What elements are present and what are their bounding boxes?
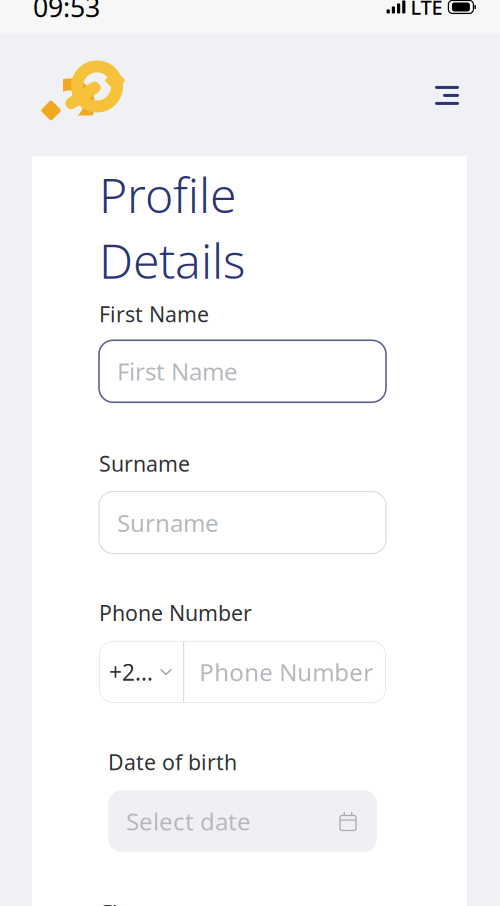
staticText: +2... [109,657,153,687]
button[interactable]: Surname [99,492,386,554]
button[interactable]: Home [42,72,124,118]
staticText: Surname [117,507,219,538]
staticText: Phone Number [199,656,373,688]
button[interactable]: Phone Number [184,641,386,703]
button[interactable]: Menu [430,78,464,112]
button[interactable]: Select date [108,790,377,852]
staticText: LTE [410,0,442,20]
staticText: Date of birth [108,748,237,776]
staticText: 09:53 [33,0,100,25]
staticText: Details [99,228,246,292]
button[interactable]: Select country code [99,641,183,703]
staticText: First Name [99,300,209,328]
staticText: Select date [126,805,251,837]
button[interactable]: First Name [99,340,386,402]
staticText: Surname [99,449,190,477]
staticText: First Name [117,355,238,387]
staticText: Phone Number [99,599,252,627]
staticText: Profile [99,162,236,226]
staticText: City [99,898,137,906]
